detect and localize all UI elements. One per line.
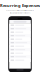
button[interactable] — [9, 23, 31, 27]
button[interactable] — [9, 37, 31, 41]
staticText: Track subscriptions and bills in one pla… — [6, 10, 34, 11]
button[interactable] — [9, 51, 31, 55]
button[interactable] — [9, 30, 31, 34]
button[interactable] — [9, 58, 31, 62]
staticText: with automatic monthly reminders — [9, 12, 30, 14]
button[interactable] — [9, 55, 31, 58]
button[interactable] — [9, 27, 31, 30]
staticText: Recurring Expenses — [0, 3, 40, 8]
button[interactable] — [9, 34, 31, 37]
button[interactable] — [9, 48, 31, 51]
button[interactable] — [9, 41, 31, 44]
button[interactable] — [9, 44, 31, 48]
